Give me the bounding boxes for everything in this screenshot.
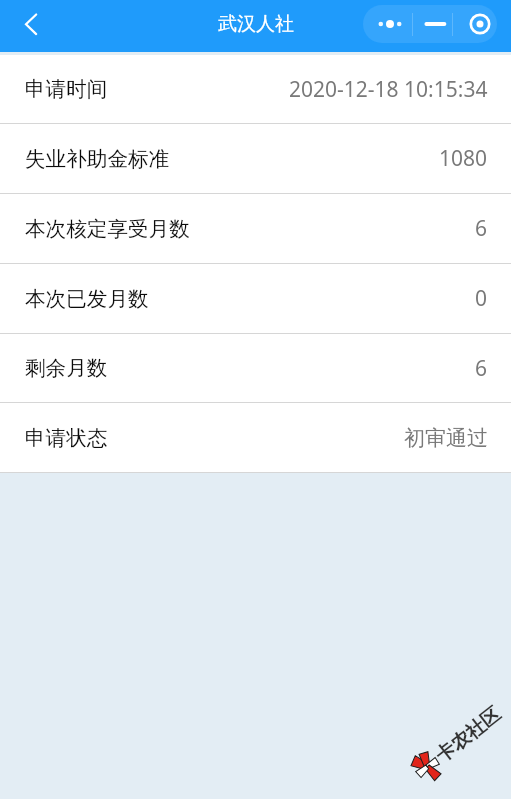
staticText: 卡农社区 <box>431 702 506 768</box>
staticText: 0 <box>475 284 488 313</box>
button[interactable]: 申请时间 <box>0 55 511 124</box>
staticText: 武汉人社 <box>218 12 294 36</box>
button[interactable]: More <box>363 5 412 43</box>
staticText: 初审通过 <box>404 425 488 451</box>
button[interactable]: 本次已发月数 <box>0 264 511 334</box>
staticText: 申请状态 <box>25 425 108 451</box>
button[interactable]: Minimize <box>413 5 452 43</box>
button[interactable]: 申请状态 <box>0 403 511 473</box>
staticText: 6 <box>475 354 488 383</box>
staticText: 本次已发月数 <box>25 286 149 312</box>
button[interactable]: 失业补助金标准 <box>0 124 511 194</box>
staticText: 剩余月数 <box>25 355 108 381</box>
staticText: 申请时间 <box>25 76 108 102</box>
staticText: 1080 <box>439 144 488 173</box>
button[interactable]: Close <box>453 5 497 43</box>
button[interactable]: 剩余月数 <box>0 334 511 403</box>
staticText: 失业补助金标准 <box>25 146 170 172</box>
button[interactable]: Back <box>0 0 52 52</box>
button[interactable]: 本次核定享受月数 <box>0 194 511 264</box>
staticText: 2020-12-18 10:15:34 <box>289 75 488 104</box>
staticText: 6 <box>475 214 488 243</box>
staticText: 本次核定享受月数 <box>25 216 190 242</box>
